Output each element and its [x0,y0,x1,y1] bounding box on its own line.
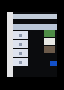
button[interactable] [13,40,28,48]
button[interactable] [13,31,28,39]
button[interactable] [13,49,28,57]
button[interactable] [13,58,28,66]
